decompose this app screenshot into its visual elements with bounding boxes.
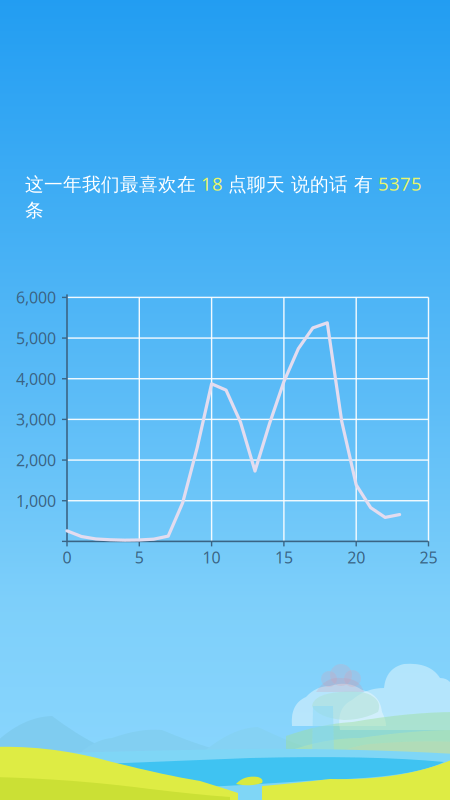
- staticText: 点聊天 说的话 有: [228, 173, 373, 196]
- staticText: 条: [25, 199, 44, 222]
- staticText: 这一年我们最喜欢在: [25, 173, 196, 196]
- staticText: 10: [203, 547, 221, 568]
- staticText: 3,000: [16, 409, 56, 430]
- staticText: 0: [62, 547, 71, 568]
- staticText: 25: [419, 547, 437, 568]
- staticText: 5,000: [16, 327, 56, 349]
- staticText: 20: [347, 547, 365, 568]
- staticText: 5375: [373, 171, 422, 196]
- staticText: 4,000: [16, 368, 56, 389]
- staticText: 1,000: [16, 490, 56, 511]
- staticText: 5: [135, 547, 144, 568]
- staticText: 2,000: [16, 449, 56, 471]
- staticText: 15: [275, 547, 293, 568]
- staticText: 18: [196, 171, 228, 196]
- staticText: 6,000: [16, 287, 56, 308]
